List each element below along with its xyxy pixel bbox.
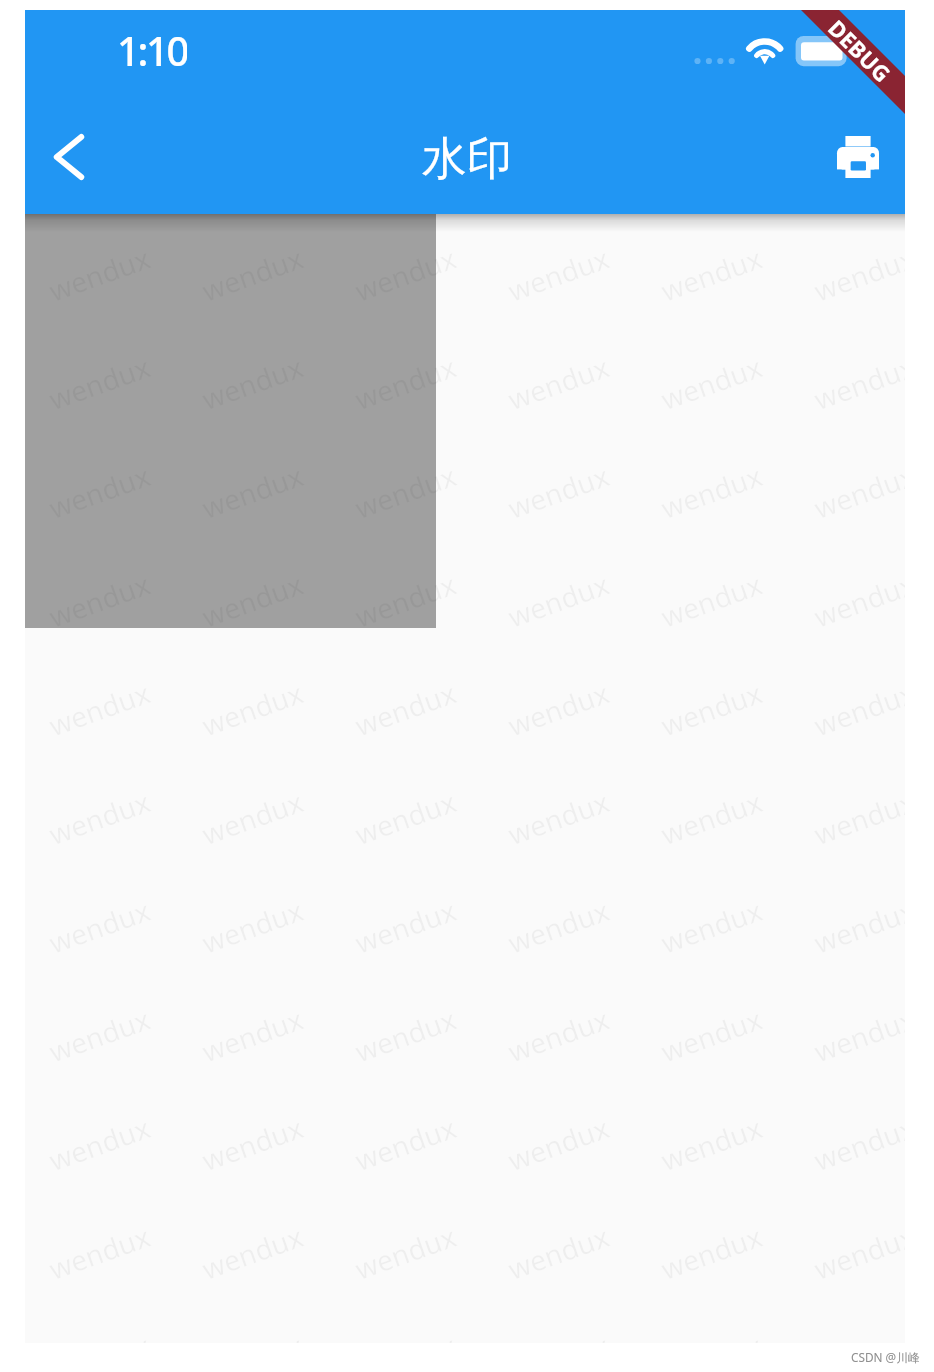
staticText: 水印 bbox=[422, 131, 512, 188]
staticText: 1:10 bbox=[117, 23, 187, 69]
button[interactable]: Image bbox=[25, 214, 436, 628]
button[interactable]: Print bbox=[814, 113, 902, 201]
button[interactable]: Back bbox=[25, 113, 113, 201]
staticText: CSDN @川峰 bbox=[851, 1349, 920, 1365]
